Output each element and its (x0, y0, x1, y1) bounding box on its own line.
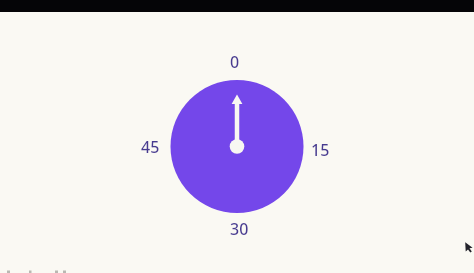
staticText: 15 (311, 139, 330, 159)
staticText: 30 (230, 218, 249, 238)
button[interactable] (170, 79, 304, 214)
staticText: 0 (230, 51, 240, 71)
staticText: 45 (141, 136, 160, 156)
